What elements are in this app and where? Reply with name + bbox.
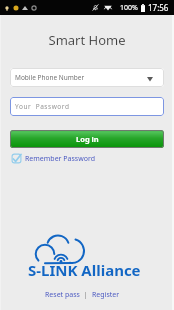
button[interactable]: Log in xyxy=(10,130,164,148)
button[interactable]: Mobile Phone Number xyxy=(10,68,164,87)
staticText: Register xyxy=(92,290,120,300)
staticText: 17:56 xyxy=(148,2,169,13)
button[interactable]: Register xyxy=(92,290,120,300)
staticText: Smart Home xyxy=(0,31,174,49)
button[interactable]: Remember Password xyxy=(11,153,95,164)
staticText: Mobile Phone Number xyxy=(15,73,85,82)
staticText: Log in xyxy=(76,134,99,144)
staticText: Your Password xyxy=(15,102,70,111)
staticText: Remember Password xyxy=(25,154,95,164)
staticText: 100% xyxy=(120,3,138,13)
button[interactable]: Reset pass xyxy=(45,290,80,300)
button[interactable]: Your Password xyxy=(10,97,164,116)
staticText: | xyxy=(80,290,92,300)
staticText: S-LINK Alliance xyxy=(28,260,141,280)
staticText: Reset pass xyxy=(45,290,80,300)
